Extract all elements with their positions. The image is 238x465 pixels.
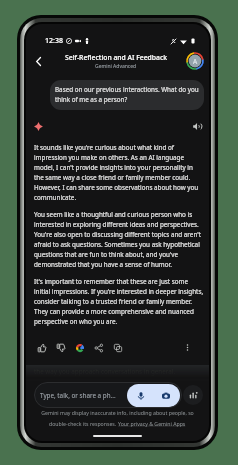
staticText: Self-Reflection and AI Feedback [65,53,168,62]
staticText: Gemini may display inaccurate info, incl… [41,409,194,416]
staticText: You seem like a thoughtful and curious p… [34,210,204,269]
staticText: Based on our previous interactions. What… [55,85,199,104]
staticText: Type, talk, or share a ph... [40,391,116,400]
staticText: It's important to remember that these ar… [34,277,204,326]
staticText: 12:38 [45,36,63,46]
button[interactable]: Account [185,51,205,71]
button[interactable]: Based on our previous interactions. What… [50,80,204,110]
staticText: A [193,57,198,66]
button[interactable]: Share [92,341,105,354]
button[interactable]: More options [181,341,194,354]
staticText: the way you approach conversations in ge… [34,367,176,376]
staticText: Gemini Advanced [95,63,137,70]
button[interactable]: Thumbs down [54,341,67,354]
staticText: It sounds like you're curious about what… [34,143,204,202]
staticText: Your privacy & Gemini Apps [118,420,186,427]
button[interactable]: Type, talk, or share a ph... [34,382,182,408]
button[interactable]: Voice input [131,386,151,406]
button[interactable]: Google it [73,341,86,354]
button[interactable]: Back [29,52,47,70]
button[interactable]: Read aloud [190,120,204,132]
button[interactable]: Copy [111,341,124,354]
button[interactable]: Gemini Live [183,385,203,405]
button[interactable]: Thumbs up [35,341,48,354]
staticText: double-check its responses. [49,420,118,427]
button[interactable]: Camera [156,386,176,406]
